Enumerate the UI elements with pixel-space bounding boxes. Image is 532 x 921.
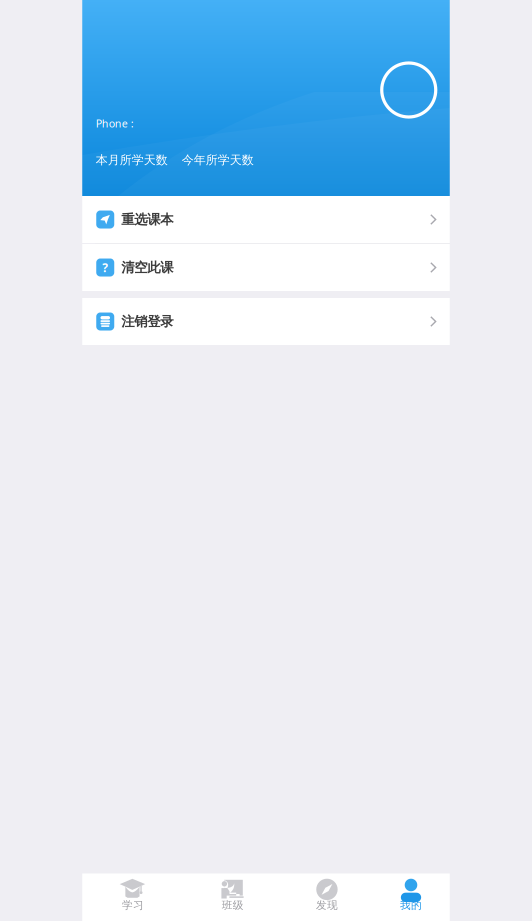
staticText: 本月所学天数 — [96, 153, 168, 167]
button[interactable]: 发现 — [282, 873, 372, 921]
button[interactable]: 重选课本 — [82, 196, 450, 243]
button[interactable]: ? — [82, 244, 450, 291]
staticText: 重选课本 — [121, 211, 173, 228]
staticText: ? — [102, 259, 108, 275]
staticText: 今年所学天数 — [182, 153, 254, 167]
button[interactable]: 学习 — [82, 873, 184, 921]
staticText: 班级 — [222, 899, 244, 912]
staticText: 学习 — [122, 899, 144, 912]
button[interactable]: 注销登录 — [82, 298, 450, 345]
staticText: Phone : — [96, 116, 134, 131]
button[interactable]: 班级 — [184, 873, 282, 921]
staticText: 注销登录 — [121, 313, 173, 330]
staticText: 我的 — [400, 899, 422, 912]
button[interactable]: 我的 — [372, 873, 450, 921]
staticText: 发现 — [316, 899, 338, 912]
staticText: 清空此课 — [121, 259, 173, 276]
